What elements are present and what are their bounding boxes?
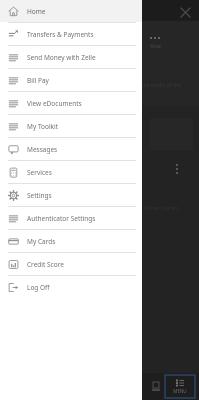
staticText: My Cards bbox=[27, 237, 56, 246]
button[interactable]: Transfers & Payments bbox=[0, 23, 142, 46]
button[interactable]: Home bbox=[0, 0, 142, 23]
button[interactable]: Credit Score bbox=[0, 253, 142, 276]
staticText: Settings bbox=[27, 191, 52, 200]
staticText: Messages bbox=[27, 145, 58, 154]
staticText: View eDocuments bbox=[27, 99, 82, 108]
staticText: My Toolkit bbox=[27, 122, 59, 131]
staticText: Other banks bbox=[144, 204, 179, 212]
button[interactable]: View eDocuments bbox=[0, 92, 142, 115]
button[interactable]: Send Money with Zelle bbox=[0, 46, 142, 69]
staticText: Wow! bbox=[150, 43, 162, 49]
button[interactable]: My Toolkit bbox=[0, 115, 142, 138]
staticText: Home bbox=[27, 7, 46, 16]
staticText: Send Money with Zelle bbox=[27, 53, 96, 62]
button[interactable]: My Cards bbox=[0, 230, 142, 253]
staticText: nd credit of the bbox=[142, 81, 182, 88]
button[interactable]: Messages bbox=[0, 138, 142, 161]
staticText: Bill Pay bbox=[27, 76, 49, 85]
button[interactable]: Services bbox=[0, 161, 142, 184]
button[interactable]: Nav item bbox=[149, 373, 163, 400]
button[interactable]: Bill Pay bbox=[0, 69, 142, 92]
staticText: Transfers & Payments bbox=[27, 30, 94, 39]
button[interactable]: MENU bbox=[165, 375, 195, 398]
button[interactable]: Settings bbox=[0, 184, 142, 207]
staticText: Services bbox=[27, 168, 52, 177]
button[interactable]: Close bbox=[175, 2, 195, 22]
button[interactable]: Log Off bbox=[0, 276, 142, 298]
button[interactable]: Authenticator Settings bbox=[0, 207, 142, 230]
staticText: Credit Score bbox=[27, 260, 64, 269]
staticText: Authenticator Settings bbox=[27, 214, 96, 223]
staticText: Log Off bbox=[27, 283, 50, 292]
staticText: MENU bbox=[173, 388, 187, 394]
